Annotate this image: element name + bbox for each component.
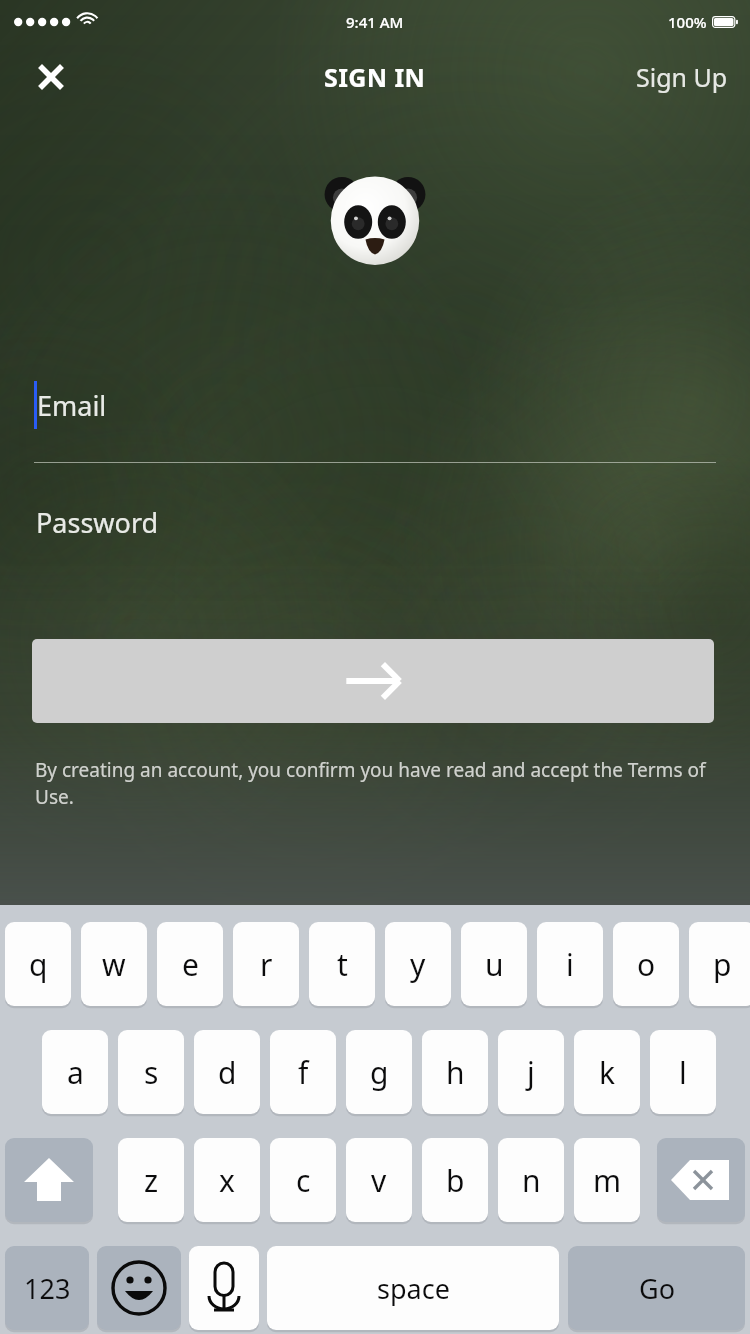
- button[interactable]: z: [118, 1138, 184, 1222]
- staticText: k: [599, 1052, 616, 1093]
- staticText: p: [713, 944, 732, 985]
- button[interactable]: a: [42, 1030, 108, 1114]
- staticText: v: [371, 1160, 387, 1201]
- button[interactable]: x: [194, 1138, 260, 1222]
- staticText: a: [67, 1052, 84, 1093]
- staticText: d: [218, 1052, 237, 1093]
- button[interactable]: 123: [5, 1246, 89, 1330]
- button[interactable]: l: [650, 1030, 716, 1114]
- staticText: s: [144, 1052, 159, 1093]
- staticText: q: [29, 944, 48, 985]
- button[interactable]: w: [81, 922, 147, 1006]
- button[interactable]: p: [689, 922, 750, 1006]
- staticText: SIGN IN: [324, 60, 426, 94]
- button[interactable]: j: [498, 1030, 564, 1114]
- button[interactable]: t: [309, 922, 375, 1006]
- button[interactable]: Sign Up: [628, 52, 736, 102]
- staticText: n: [522, 1160, 541, 1201]
- staticText: h: [446, 1052, 465, 1093]
- staticText: l: [679, 1052, 687, 1093]
- staticText: w: [102, 944, 126, 985]
- staticText: r: [260, 944, 273, 985]
- button[interactable]: space: [267, 1246, 559, 1330]
- staticText: By creating an account, you confirm you …: [35, 757, 717, 810]
- button[interactable]: k: [574, 1030, 640, 1114]
- button[interactable]: i: [537, 922, 603, 1006]
- staticText: t: [337, 944, 348, 985]
- button[interactable]: n: [498, 1138, 564, 1222]
- button[interactable]: m: [574, 1138, 640, 1222]
- button[interactable]: Email: [34, 374, 716, 436]
- staticText: space: [377, 1270, 450, 1307]
- button[interactable]: v: [346, 1138, 412, 1222]
- staticText: i: [566, 944, 574, 985]
- button[interactable]: s: [118, 1030, 184, 1114]
- staticText: u: [485, 944, 504, 985]
- staticText: 123: [24, 1270, 71, 1307]
- staticText: x: [219, 1160, 235, 1201]
- staticText: y: [410, 944, 426, 985]
- staticText: 9:41 AM: [346, 12, 404, 32]
- button[interactable]: f: [270, 1030, 336, 1114]
- staticText: e: [182, 944, 199, 985]
- button[interactable]: b: [422, 1138, 488, 1222]
- staticText: Go: [639, 1270, 675, 1307]
- staticText: Sign Up: [636, 60, 728, 94]
- staticText: j: [527, 1052, 535, 1093]
- button[interactable]: q: [5, 922, 71, 1006]
- staticText: o: [637, 944, 656, 985]
- button[interactable]: Emoji: [97, 1246, 181, 1330]
- staticText: b: [446, 1160, 465, 1201]
- button[interactable]: r: [233, 922, 299, 1006]
- staticText: f: [298, 1052, 309, 1093]
- button[interactable]: c: [270, 1138, 336, 1222]
- button[interactable]: o: [613, 922, 679, 1006]
- staticText: Password: [36, 504, 159, 541]
- button[interactable]: Dictation: [189, 1246, 259, 1330]
- button[interactable]: d: [194, 1030, 260, 1114]
- button[interactable]: h: [422, 1030, 488, 1114]
- staticText: z: [144, 1160, 159, 1201]
- staticText: c: [296, 1160, 311, 1201]
- button[interactable]: Shift: [5, 1138, 93, 1222]
- button[interactable]: u: [461, 922, 527, 1006]
- staticText: Email: [37, 387, 107, 424]
- staticText: 100%: [668, 12, 707, 32]
- button[interactable]: e: [157, 922, 223, 1006]
- button[interactable]: Backspace: [657, 1138, 745, 1222]
- button[interactable]: Close: [22, 48, 80, 106]
- button[interactable]: g: [346, 1030, 412, 1114]
- button[interactable]: Continue: [32, 639, 714, 723]
- button[interactable]: y: [385, 922, 451, 1006]
- button[interactable]: Go: [568, 1246, 745, 1330]
- staticText: m: [593, 1160, 622, 1201]
- button[interactable]: Password: [34, 497, 716, 547]
- staticText: g: [370, 1052, 389, 1093]
